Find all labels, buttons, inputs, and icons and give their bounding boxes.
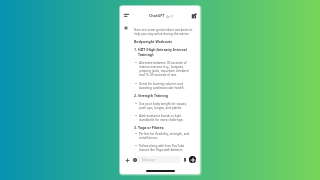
button[interactable]: Attach bbox=[123, 156, 131, 164]
staticText: dumbbells for extra challenge. bbox=[139, 118, 184, 122]
staticText: boosting cardiovascular health. bbox=[139, 86, 185, 90]
staticText: intense exercise (e.g., burpees, bbox=[139, 65, 184, 69]
staticText: Follow along with free YouTube bbox=[139, 144, 185, 148]
staticText: Use your body weight for squats, bbox=[139, 102, 187, 106]
staticText: classes like Yoga with Adriene. bbox=[139, 148, 183, 152]
staticText: Perfect for flexibility, strength, and bbox=[139, 132, 190, 136]
button[interactable]: Voice mode bbox=[189, 156, 196, 163]
staticText: mindfulness. bbox=[139, 136, 158, 140]
staticText: help you stay active during the winter: bbox=[134, 32, 190, 36]
staticText: Great for burning calories and bbox=[139, 82, 183, 86]
staticText: ChatGPT bbox=[149, 13, 165, 18]
staticText: Alternate between 30 seconds of bbox=[139, 61, 187, 65]
button[interactable]: ChatGPT bbox=[149, 13, 173, 18]
staticText: Training): bbox=[138, 52, 155, 57]
staticText: Message bbox=[142, 158, 155, 162]
staticText: Bodyweight Workouts bbox=[134, 39, 173, 44]
button[interactable]: Tools bbox=[131, 156, 139, 164]
staticText: Here are some great indoor workouts to bbox=[134, 28, 193, 32]
staticText: 1. bbox=[134, 47, 137, 52]
button[interactable]: Open sidebar bbox=[121, 11, 131, 20]
staticText: HIIT (High-Intensity Interval bbox=[138, 47, 187, 52]
staticText: 2. bbox=[134, 93, 137, 98]
staticText: jumping jacks, mountain climbers) bbox=[139, 69, 189, 73]
staticText: 4o bbox=[166, 14, 170, 18]
button[interactable]: New chat bbox=[189, 11, 198, 20]
staticText: Add resistance bands or light bbox=[139, 114, 182, 118]
staticText: Strength Training bbox=[138, 93, 168, 98]
staticText: and 15-30 seconds of rest. bbox=[139, 73, 178, 77]
staticText: 3. bbox=[134, 125, 137, 130]
button[interactable]: Dictate bbox=[181, 156, 189, 164]
button[interactable]: Message bbox=[136, 156, 181, 163]
staticText: push-ups, lunges, and planks. bbox=[139, 106, 183, 110]
staticText: Yoga or Pilates: bbox=[138, 125, 165, 130]
